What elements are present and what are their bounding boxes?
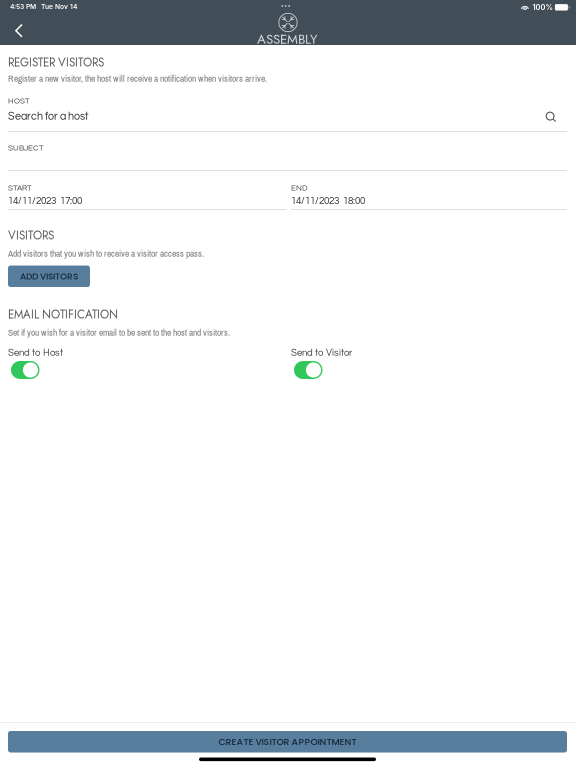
button[interactable]: Search for a host xyxy=(544,110,558,124)
staticText: ADD VISITORS xyxy=(20,270,78,282)
button[interactable]: Send to Host xyxy=(11,361,39,379)
staticText: Add visitors that you wish to receive a … xyxy=(8,247,204,260)
staticText: HOST xyxy=(8,97,30,105)
staticText: REGISTER VISITORS xyxy=(8,54,104,71)
staticText: 100% xyxy=(532,3,552,12)
staticText: Tue Nov 14 xyxy=(41,2,77,11)
staticText: START xyxy=(8,184,32,192)
staticText: Set if you wish for a visitor email to b… xyxy=(8,326,230,339)
button[interactable]: ADD VISITORS xyxy=(8,265,90,287)
staticText: SUBJECT xyxy=(8,144,44,152)
staticText: Send to Visitor xyxy=(291,348,352,358)
staticText: END xyxy=(291,184,308,192)
staticText: Send to Host xyxy=(8,348,63,358)
button[interactable]: CREATE VISITOR APPOINTMENT xyxy=(8,731,567,752)
staticText: Search for a host xyxy=(8,111,88,122)
staticText: ASSEMBLY xyxy=(257,29,317,49)
staticText: Register a new visitor, the host will re… xyxy=(8,72,267,85)
staticText: 14/11/2023 17:00 xyxy=(8,196,82,206)
staticText: EMAIL NOTIFICATION xyxy=(8,306,118,323)
staticText: 4:53 PM xyxy=(10,2,36,11)
button[interactable]: Send to Visitor xyxy=(294,361,322,379)
button[interactable]: Back xyxy=(7,21,31,41)
staticText: VISITORS xyxy=(8,227,54,244)
staticText: 14/11/2023 18:00 xyxy=(291,196,365,206)
staticText: CREATE VISITOR APPOINTMENT xyxy=(218,735,356,748)
